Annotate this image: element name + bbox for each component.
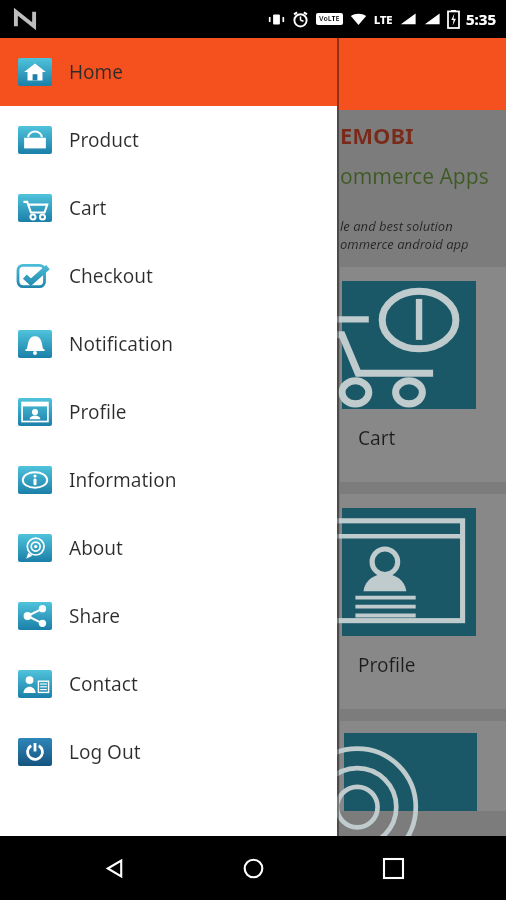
button[interactable]: Cart xyxy=(340,267,506,482)
button[interactable]: Back xyxy=(88,842,140,894)
staticText: Information xyxy=(69,467,177,493)
button[interactable]: Contact xyxy=(0,650,337,718)
staticText: Checkout xyxy=(69,263,153,289)
staticText: 5:35 xyxy=(466,9,496,29)
button[interactable]: Share xyxy=(0,582,337,650)
staticText: Cart xyxy=(358,425,396,451)
staticText: Home xyxy=(69,59,124,85)
button[interactable]: Checkout xyxy=(0,242,337,310)
button[interactable]: Cart xyxy=(0,174,337,242)
staticText: Ecommerce Android App xyxy=(76,59,333,89)
staticText: Profile xyxy=(69,399,127,425)
staticText: Share xyxy=(69,603,121,629)
button[interactable]: Profile xyxy=(0,378,337,446)
staticText: About xyxy=(69,535,123,561)
staticText: EMOBI xyxy=(340,120,414,150)
button[interactable]: Notification xyxy=(0,310,337,378)
staticText: Log Out xyxy=(69,739,141,765)
staticText: Contact xyxy=(69,671,138,697)
button[interactable]: Profile xyxy=(340,494,506,709)
staticText: Cart xyxy=(69,195,107,221)
button[interactable]: Product xyxy=(0,106,337,174)
staticText: Notification xyxy=(69,331,173,357)
button[interactable]: Recent apps xyxy=(367,842,419,894)
button[interactable]: Log Out xyxy=(0,718,337,786)
button[interactable]: Information xyxy=(0,446,337,514)
button[interactable]: Home xyxy=(0,38,337,106)
staticText: ommerce Apps xyxy=(340,162,489,191)
staticText: ommerce android app xyxy=(340,235,469,253)
staticText: Product xyxy=(69,127,139,153)
button[interactable]: About xyxy=(0,514,337,582)
staticText: le and best solution xyxy=(340,217,453,235)
button[interactable]: Home xyxy=(227,842,279,894)
staticText: LTE xyxy=(374,12,393,27)
button[interactable]: Open navigation drawer xyxy=(18,52,62,96)
staticText: Profile xyxy=(358,652,416,678)
staticText: VoLTE xyxy=(319,14,340,24)
